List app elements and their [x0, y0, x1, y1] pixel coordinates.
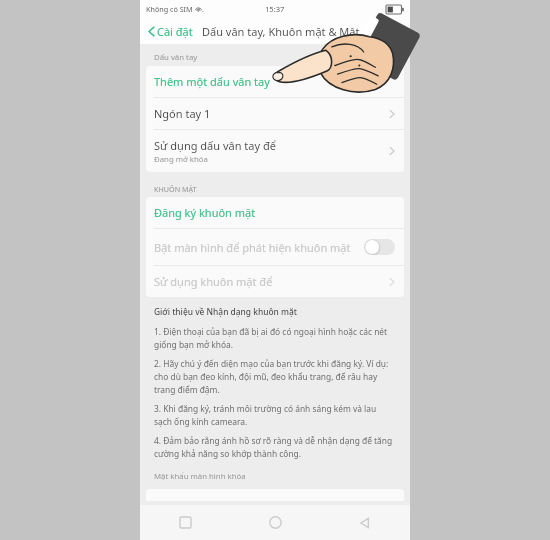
staticText: Sử dụng khuôn mặt để	[154, 274, 389, 289]
staticText: Mật khẩu màn hình khóa	[154, 471, 246, 482]
staticText: Đăng ký khuôn mặt	[154, 205, 395, 220]
button[interactable]: Recent apps	[140, 505, 230, 540]
staticText: Cài đặt	[157, 24, 193, 39]
staticText: 4. Đảm bảo rằng ánh hồ sơ rõ ràng và dễ …	[154, 435, 396, 459]
button[interactable]: Đăng ký khuôn mặt	[146, 197, 404, 228]
button[interactable]: Back	[320, 505, 410, 540]
staticText: Dấu vân tay, Khuôn mặt & Mật mã	[202, 24, 379, 39]
button[interactable]: Home	[230, 505, 320, 540]
staticText: Đang mở khóa	[154, 154, 208, 165]
staticText: Giới thiệu về Nhận dạng khuôn mặt	[154, 306, 297, 317]
staticText: Bật màn hình để phát hiện khuôn mặt	[154, 240, 364, 255]
button[interactable]: Ngón tay 1	[146, 98, 404, 129]
staticText: 3. Khi đăng ký, tránh môi trường có ánh …	[154, 403, 396, 427]
button[interactable]: Sử dụng dấu vân tay để	[146, 130, 404, 172]
staticText: KHUÔN MẶT	[154, 184, 197, 194]
button[interactable]: Cài đặt	[140, 21, 197, 42]
button[interactable]: Sử dụng khuôn mặt để	[146, 266, 404, 297]
staticText: Ngón tay 1	[154, 106, 389, 121]
staticText: Không có SIM	[146, 4, 193, 14]
staticText: 1. Điện thoại của bạn đã bị ai đó có ngo…	[154, 326, 396, 350]
button[interactable]: Thêm một dấu vân tay	[146, 66, 404, 97]
staticText: Dấu vân tay	[154, 52, 198, 63]
staticText: Sử dụng dấu vân tay để	[154, 138, 276, 153]
staticText: 2. Hãy chú ý đến diện mạo của bạn trước …	[154, 358, 396, 395]
button[interactable]: Bật màn hình để phát hiện khuôn mặt	[146, 229, 404, 265]
staticText: .	[202, 4, 204, 14]
staticText: Thêm một dấu vân tay	[154, 74, 395, 89]
staticText: 15:37	[265, 4, 285, 14]
